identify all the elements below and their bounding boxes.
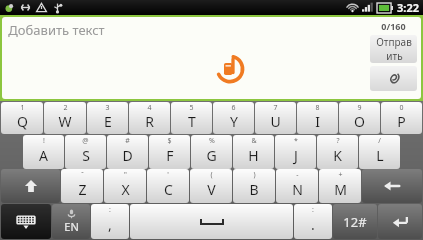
staticText: : <box>312 205 314 215</box>
button[interactable]: ( <box>190 169 232 203</box>
staticText: 12# <box>343 213 367 231</box>
staticText: Q <box>17 112 28 131</box>
button[interactable]: Hide keyboard <box>1 204 51 239</box>
button[interactable]: ! <box>23 135 64 169</box>
button[interactable]: 0 <box>381 102 422 134</box>
button[interactable]: Backspace <box>362 169 422 203</box>
button[interactable]: ? <box>317 135 358 169</box>
staticText: N <box>292 180 303 199</box>
button[interactable]: ˇ <box>61 169 103 203</box>
button[interactable]: 2 <box>44 102 86 134</box>
staticText: T <box>188 112 196 131</box>
staticText: * <box>294 136 298 146</box>
staticText: % <box>209 136 215 146</box>
button[interactable]: * <box>275 135 316 169</box>
staticText: . <box>311 215 315 234</box>
staticText: - <box>296 170 299 180</box>
button[interactable]: % <box>191 135 232 169</box>
staticText: K <box>333 146 342 165</box>
staticText: 2 <box>63 103 68 113</box>
staticText: ! <box>43 136 45 146</box>
button[interactable]: 7 <box>255 102 296 134</box>
staticText: H <box>248 146 259 165</box>
staticText: C <box>164 180 173 199</box>
staticText: S <box>82 146 90 165</box>
button[interactable]: # <box>107 135 148 169</box>
button[interactable]: Отправ <box>370 35 417 63</box>
staticText: X <box>121 180 130 199</box>
staticText: 9 <box>357 103 362 113</box>
staticText: ( <box>210 170 213 180</box>
button[interactable]: ) <box>233 169 275 203</box>
staticText: Z <box>78 180 87 199</box>
button[interactable]: + <box>319 169 361 203</box>
staticText: 0/160 <box>381 20 406 32</box>
staticText: M <box>334 180 347 199</box>
button[interactable]: Attach <box>370 66 417 91</box>
staticText: G <box>206 146 217 165</box>
staticText: 5 <box>189 103 194 113</box>
staticText: & <box>251 136 257 146</box>
staticText: $ <box>167 136 172 146</box>
button[interactable]: Space <box>130 204 293 239</box>
staticText: E <box>104 112 112 131</box>
button[interactable]: : <box>294 204 332 239</box>
button[interactable]: 4 <box>129 102 170 134</box>
button[interactable]: - <box>276 169 318 203</box>
button[interactable]: / <box>359 135 400 169</box>
staticText: Добавить текст <box>8 21 105 39</box>
button[interactable]: $ <box>149 135 190 169</box>
button[interactable]: : <box>91 204 129 239</box>
button[interactable]: 1 <box>1 102 43 134</box>
staticText: R <box>145 112 154 131</box>
staticText: ить <box>386 49 403 63</box>
staticText: 3 <box>105 103 110 113</box>
staticText: 4 <box>147 103 152 113</box>
button[interactable]: Language EN <box>52 204 90 239</box>
staticText: 3:22 <box>397 0 419 15</box>
button[interactable]: @ <box>65 135 106 169</box>
staticText: W <box>58 112 72 131</box>
staticText: B <box>249 180 259 199</box>
button[interactable]: 5 <box>171 102 212 134</box>
staticText: 0 <box>399 103 404 113</box>
button[interactable]: & <box>233 135 274 169</box>
button[interactable]: Shift <box>1 169 60 203</box>
staticText: V <box>207 180 216 199</box>
staticText: + <box>338 170 343 180</box>
staticText: # <box>125 136 130 146</box>
staticText: U <box>270 112 281 131</box>
button[interactable]: 8 <box>297 102 338 134</box>
staticText: 1 <box>20 103 25 113</box>
staticText: F <box>166 146 174 165</box>
staticText: I <box>315 112 320 131</box>
staticText: EN <box>64 219 79 234</box>
staticText: L <box>376 146 384 165</box>
staticText: ) <box>253 170 256 180</box>
staticText: P <box>397 112 406 131</box>
staticText: 7 <box>273 103 278 113</box>
staticText: ˇ <box>81 170 84 180</box>
button[interactable]: " <box>104 169 146 203</box>
staticText: " <box>124 170 127 180</box>
staticText: , <box>108 215 112 234</box>
staticText: Y <box>230 112 238 131</box>
staticText: @ <box>82 136 89 146</box>
staticText: O <box>354 112 365 131</box>
button[interactable]: 9 <box>339 102 380 134</box>
staticText: Отправ <box>376 35 412 49</box>
staticText: : <box>109 205 111 215</box>
staticText: J <box>294 146 298 165</box>
button[interactable]: 3 <box>87 102 128 134</box>
staticText: ' <box>167 170 169 180</box>
staticText: A <box>39 146 48 165</box>
staticText: D <box>122 146 133 165</box>
staticText: / <box>378 136 381 146</box>
staticText: ? <box>336 136 340 146</box>
button[interactable]: 6 <box>213 102 254 134</box>
staticText: 6 <box>231 103 236 113</box>
button[interactable]: ' <box>147 169 189 203</box>
button[interactable]: Numbers and symbols <box>333 204 377 239</box>
button[interactable]: Добавить текст <box>8 21 105 39</box>
button[interactable]: Enter <box>378 204 422 239</box>
